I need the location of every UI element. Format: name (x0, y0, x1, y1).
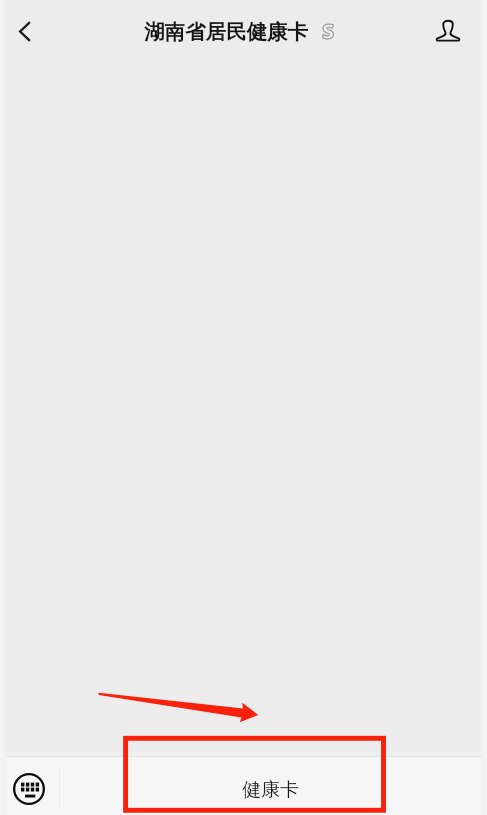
button[interactable]: Back (3, 9, 47, 53)
button[interactable]: 健康卡 (60, 757, 487, 815)
button[interactable]: Keyboard (7, 766, 53, 806)
staticText: 湖南省居民健康卡 (144, 19, 308, 45)
button[interactable]: Profile (428, 11, 468, 51)
staticText: S (322, 17, 335, 46)
staticText: 健康卡 (242, 778, 299, 802)
